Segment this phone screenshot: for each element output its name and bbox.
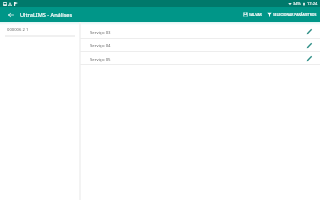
button[interactable]: 000006 2 1 (0, 23, 79, 35)
button[interactable]: Editar (300, 38, 318, 52)
staticText: Serviço 05 (90, 56, 111, 62)
button[interactable]: Serviço 05 (80, 52, 320, 65)
staticText: SELECIONAR PARÂMETROS (273, 12, 317, 17)
button[interactable]: Serviço 04 (80, 38, 320, 52)
staticText: Serviço 04 (90, 42, 111, 48)
staticText: 000006 2 1 (7, 27, 29, 33)
button[interactable]: Editar (300, 52, 318, 65)
button[interactable]: SELECIONAR PARÂMETROS (265, 7, 319, 22)
staticText: UltraLIMS - Análises (20, 11, 73, 19)
button[interactable]: Voltar (0, 7, 21, 22)
staticText: 34% (293, 1, 301, 6)
staticText: 17:24 (307, 1, 318, 6)
button[interactable]: Editar (300, 24, 318, 38)
staticText: Serviço 03 (90, 29, 111, 35)
button[interactable]: SALVAR (241, 7, 264, 22)
button[interactable]: Serviço 03 (80, 24, 320, 38)
staticText: SALVAR (249, 12, 262, 17)
